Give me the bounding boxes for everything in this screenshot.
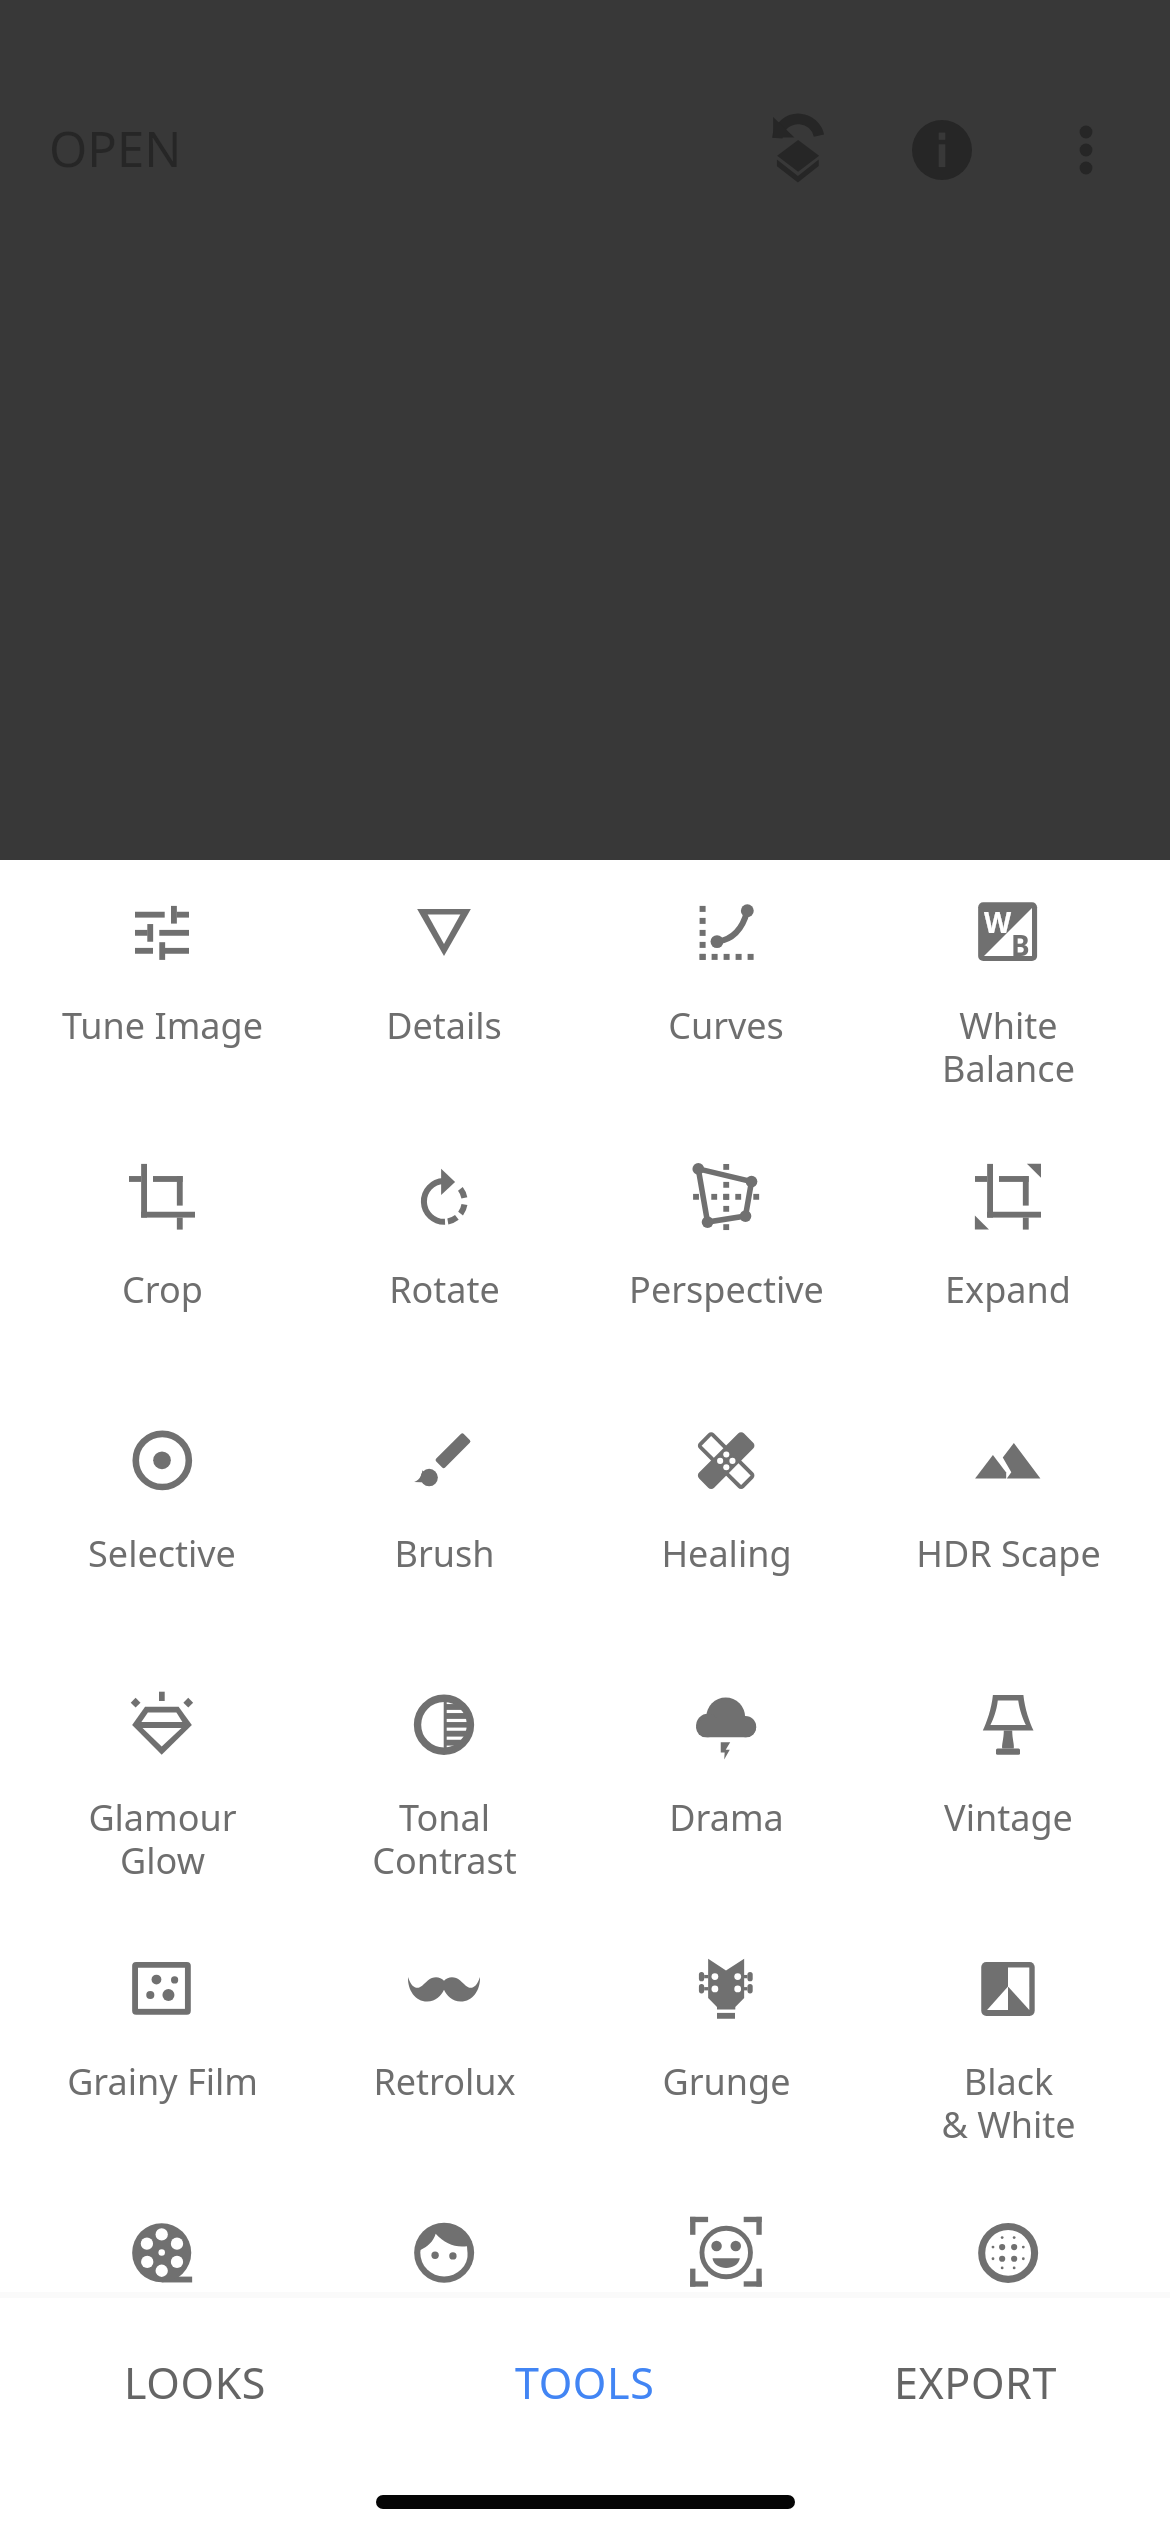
staticText: Expand [945, 1265, 1071, 1314]
button[interactable]: Grainy Film [21, 1916, 303, 2180]
button[interactable]: Grunge [585, 1916, 867, 2180]
staticText: TOOLS [515, 2353, 655, 2412]
staticText: Details [386, 1001, 502, 1050]
button[interactable]: Rotate [303, 1124, 585, 1388]
button[interactable]: Perspective [585, 1124, 867, 1388]
button[interactable]: Details [303, 860, 585, 1124]
staticText: LOOKS [124, 2353, 267, 2412]
staticText: Vintage [944, 1793, 1073, 1842]
button[interactable]: Healing [585, 1388, 867, 1652]
button[interactable]: Tonal Contrast [303, 1652, 585, 1916]
button[interactable]: Selective [21, 1388, 303, 1652]
button[interactable]: OPEN [35, 107, 196, 194]
button[interactable]: Expand [867, 1124, 1149, 1388]
staticText: Crop [122, 1265, 203, 1314]
button[interactable]: Undo stack [742, 95, 852, 205]
button[interactable] [867, 2180, 1149, 2444]
staticText: HDR Scape [916, 1529, 1101, 1578]
button[interactable] [303, 2180, 585, 2444]
staticText: Healing [661, 1529, 792, 1578]
button[interactable] [585, 2180, 867, 2444]
staticText: Tonal Contrast [372, 1793, 517, 1885]
staticText: Retrolux [373, 2057, 516, 2106]
staticText: Black & White [941, 2057, 1076, 2149]
button[interactable]: HDR Scape [867, 1388, 1149, 1652]
button[interactable]: Brush [303, 1388, 585, 1652]
button[interactable]: Tune Image [21, 860, 303, 1124]
button[interactable]: EXPORT [780, 2298, 1170, 2467]
button[interactable]: Crop [21, 1124, 303, 1388]
staticText: White Balance [942, 1001, 1075, 1093]
button[interactable]: LOOKS [0, 2298, 390, 2467]
button[interactable]: Vintage [867, 1652, 1149, 1916]
staticText: Drama [669, 1793, 784, 1842]
staticText: Curves [668, 1001, 784, 1050]
staticText: Tune Image [62, 1001, 263, 1050]
staticText: Selective [88, 1529, 236, 1578]
staticText: Grainy Film [67, 2057, 258, 2106]
button[interactable]: Curves [585, 860, 867, 1124]
button[interactable]: Black & White [867, 1916, 1149, 2180]
staticText: Brush [394, 1529, 495, 1578]
button[interactable]: Drama [585, 1652, 867, 1916]
staticText: W [984, 903, 1012, 941]
staticText: Rotate [389, 1265, 500, 1314]
button[interactable]: Retrolux [303, 1916, 585, 2180]
staticText: Glamour Glow [88, 1793, 237, 1885]
button[interactable]: W [867, 860, 1149, 1124]
staticText: Grunge [662, 2057, 791, 2106]
staticText: OPEN [49, 115, 182, 182]
button[interactable]: More options [1031, 95, 1141, 205]
button[interactable]: TOOLS [390, 2298, 780, 2467]
button[interactable]: Glamour Glow [21, 1652, 303, 1916]
button[interactable] [21, 2180, 303, 2444]
staticText: Perspective [629, 1265, 824, 1314]
button[interactable]: Info [887, 95, 997, 205]
staticText: B [1011, 926, 1030, 964]
staticText: EXPORT [894, 2353, 1057, 2412]
